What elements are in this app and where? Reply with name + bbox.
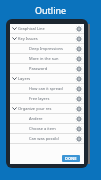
other: Item options [76, 96, 82, 102]
other: Collapse section [12, 36, 17, 41]
other: Item options [76, 76, 82, 82]
other: Item options [76, 56, 82, 62]
staticText: Can was possibl [29, 136, 76, 141]
button[interactable]: Free layers [10, 94, 84, 104]
other: Item options [76, 46, 82, 52]
staticText: DONE [65, 156, 77, 161]
other: Item options [76, 66, 82, 72]
staticText: Andere [29, 116, 76, 121]
button[interactable]: Andere [10, 114, 84, 124]
other: Item options [76, 136, 82, 142]
other: Collapse section [12, 26, 17, 31]
other: Item options [76, 36, 82, 42]
button[interactable]: Collapse section [10, 24, 84, 34]
other: Collapse section [12, 106, 17, 111]
button[interactable]: DONE [62, 155, 80, 162]
staticText: Deep Impressions [29, 46, 76, 51]
button[interactable]: Collapse section [10, 74, 84, 84]
staticText: Free layers [29, 96, 76, 101]
button[interactable]: Deep Impressions [10, 44, 84, 54]
button[interactable]: Can was possibl [10, 134, 84, 144]
other: Collapse section [12, 76, 17, 81]
button[interactable]: Password [10, 64, 84, 74]
other: Item options [76, 26, 82, 32]
other: Item options [76, 116, 82, 122]
other: Item options [76, 86, 82, 92]
staticText: Layers [18, 76, 76, 81]
other: Item options [76, 106, 82, 112]
button[interactable]: How can it spread [10, 84, 84, 94]
staticText: Organize your res [18, 106, 76, 111]
button[interactable]: Collapse section [10, 104, 84, 114]
staticText: Key Issues [18, 36, 76, 41]
staticText: Password [29, 66, 76, 71]
button[interactable]: Collapse section [10, 34, 84, 44]
button[interactable]: Choose a item [10, 124, 84, 134]
staticText: Graphical Line [18, 26, 76, 31]
staticText: How can it spread [29, 86, 76, 91]
button[interactable]: More in the sun [10, 54, 84, 64]
other: Item options [76, 126, 82, 132]
staticText: More in the sun [29, 56, 76, 61]
staticText: Outline [35, 4, 67, 16]
staticText: Choose a item [29, 126, 76, 131]
